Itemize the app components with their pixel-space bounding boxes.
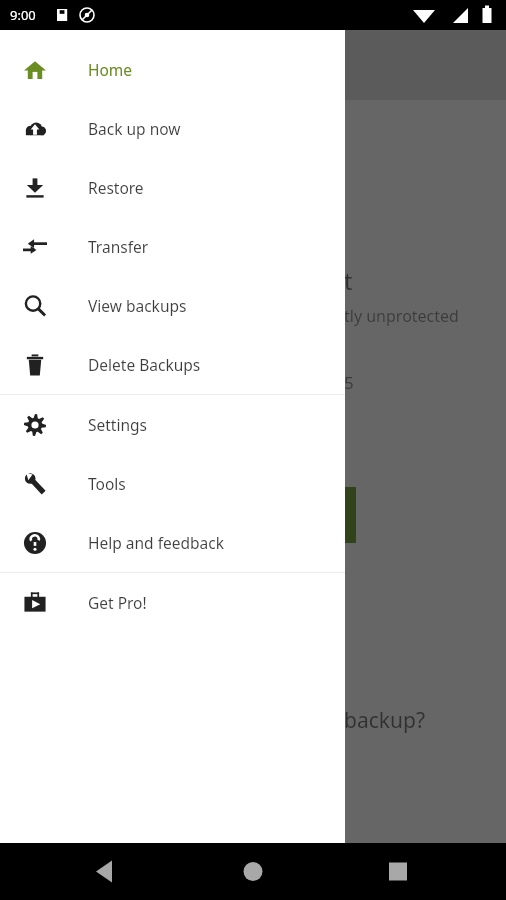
staticText: View backups bbox=[88, 295, 187, 316]
staticText: 9:00 bbox=[10, 6, 36, 24]
button[interactable]: Tools bbox=[0, 454, 345, 513]
button[interactable]: Delete Backups bbox=[0, 335, 345, 394]
button[interactable]: Settings bbox=[0, 395, 345, 454]
button[interactable]: Get Pro! bbox=[0, 573, 345, 632]
button[interactable]: Transfer bbox=[0, 217, 345, 276]
staticText: Home bbox=[88, 59, 133, 80]
staticText: t bbox=[344, 265, 353, 296]
staticText: tly unprotected bbox=[344, 305, 459, 327]
staticText: Get Pro! bbox=[88, 592, 147, 613]
button[interactable]: Help and feedback bbox=[0, 513, 345, 572]
staticText: Delete Backups bbox=[88, 354, 201, 375]
staticText: Tools bbox=[88, 473, 126, 494]
staticText: Back up now bbox=[88, 118, 181, 139]
staticText: Transfer bbox=[88, 236, 149, 257]
button[interactable]: Back up now bbox=[0, 99, 345, 158]
staticText: Help and feedback bbox=[88, 532, 224, 553]
button[interactable]: Restore bbox=[0, 158, 345, 217]
staticText: backup? bbox=[344, 706, 425, 735]
staticText: Restore bbox=[88, 177, 144, 198]
staticText: 5 bbox=[344, 371, 354, 394]
button[interactable]: View backups bbox=[0, 276, 345, 335]
button[interactable]: Home bbox=[0, 40, 345, 99]
staticText: Settings bbox=[88, 414, 147, 435]
